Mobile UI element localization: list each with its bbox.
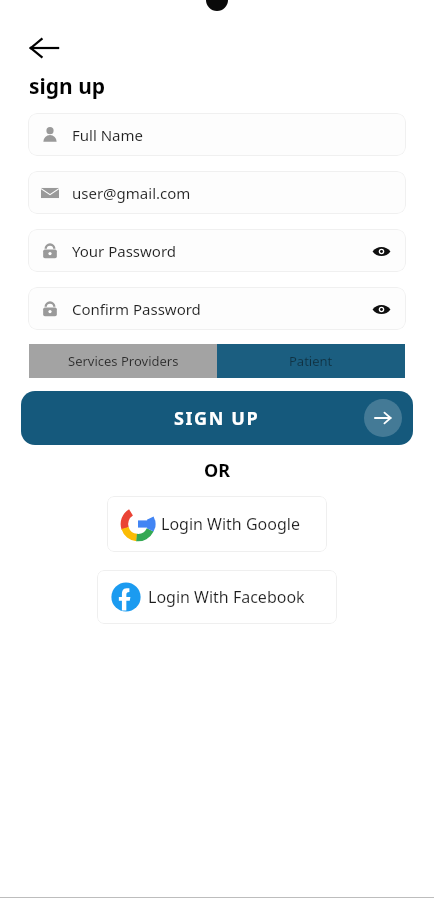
button[interactable]: user@gmail.com — [28, 171, 406, 214]
staticText: Your Password — [72, 241, 369, 261]
staticText: Confirm Password — [72, 299, 369, 319]
button[interactable]: SIGN UP — [21, 391, 413, 445]
button[interactable]: Login With Facebook — [97, 570, 337, 624]
button[interactable]: Back — [22, 26, 66, 70]
button[interactable]: Services Providers — [29, 344, 217, 378]
button[interactable]: Patient — [217, 344, 405, 378]
staticText: user@gmail.com — [72, 183, 393, 203]
button[interactable]: Toggle password visibility — [369, 239, 393, 263]
staticText: sign up — [29, 72, 106, 101]
button[interactable]: Confirm Password — [28, 287, 406, 330]
staticText: SIGN UP — [174, 406, 260, 431]
button[interactable]: Toggle password visibility — [369, 297, 393, 321]
button[interactable]: Full Name — [28, 113, 406, 156]
button[interactable]: Login With Google — [107, 496, 327, 552]
staticText: Services Providers — [68, 352, 179, 370]
staticText: Full Name — [72, 125, 393, 145]
staticText: OR — [0, 458, 434, 483]
staticText: Login With Google — [161, 513, 300, 535]
button[interactable]: Your Password — [28, 229, 406, 272]
staticText: Login With Facebook — [148, 586, 305, 608]
staticText: Patient — [289, 352, 333, 370]
